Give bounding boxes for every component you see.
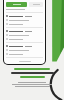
button[interactable] [6,34,43,36]
button[interactable] [6,2,27,7]
button[interactable] [6,15,43,17]
button[interactable] [6,49,43,51]
button[interactable] [6,23,43,25]
button[interactable] [6,38,43,40]
button[interactable] [6,45,43,47]
button[interactable] [29,2,43,7]
button[interactable] [6,19,43,21]
button[interactable] [6,30,43,32]
button[interactable] [6,53,43,55]
